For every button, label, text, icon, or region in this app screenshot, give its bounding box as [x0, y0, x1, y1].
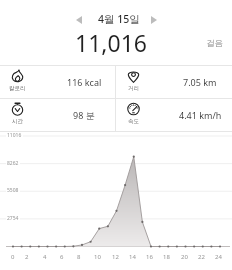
staticText: 4월 15일	[98, 12, 140, 26]
button[interactable]: 칼로리	[0, 66, 115, 98]
staticText: 14	[129, 253, 136, 261]
staticText: 4.41 km/h	[179, 109, 222, 121]
staticText: 20	[181, 253, 188, 261]
staticText: 0	[11, 253, 15, 261]
button[interactable]: 속도	[116, 99, 232, 131]
staticText: 6	[60, 253, 64, 261]
staticText: 7.05 km	[183, 76, 217, 88]
staticText: 2754	[7, 215, 19, 222]
staticText: 16	[146, 253, 153, 261]
staticText: 칼로리	[9, 85, 26, 92]
staticText: 116 kcal	[67, 76, 102, 88]
staticText: 11,016	[75, 27, 147, 58]
staticText: 거리	[128, 85, 139, 92]
staticText: 22	[198, 253, 205, 261]
staticText: 18	[163, 253, 170, 261]
staticText: 속도	[128, 118, 139, 125]
button[interactable]: 거리	[116, 66, 232, 98]
staticText: 8262	[7, 160, 19, 167]
staticText: 98 분	[73, 109, 95, 121]
staticText: 4	[43, 253, 47, 261]
button[interactable]: Previous day	[68, 8, 90, 31]
staticText: 10	[94, 253, 101, 261]
button[interactable]: 시간	[0, 99, 115, 131]
staticText: 시간	[12, 118, 23, 125]
button[interactable]: Next day	[143, 8, 165, 31]
staticText: 5508	[7, 187, 19, 194]
staticText: 12	[112, 253, 119, 261]
staticText: 24	[215, 253, 222, 261]
staticText: 걸음	[206, 38, 223, 49]
staticText: 8	[77, 253, 81, 261]
staticText: 11016	[7, 132, 22, 139]
staticText: 2	[25, 253, 29, 261]
